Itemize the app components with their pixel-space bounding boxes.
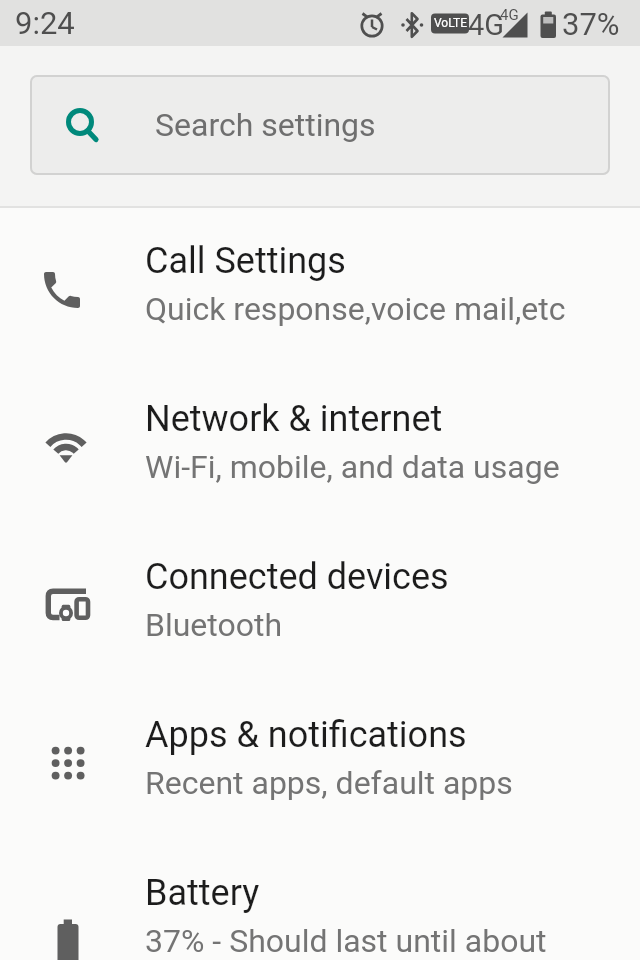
staticText: Recent apps, default apps: [145, 764, 513, 802]
staticText: 4G: [500, 6, 519, 24]
staticText: 37% - Should last until about: [145, 922, 547, 960]
button[interactable]: Apps & notifications: [0, 682, 640, 840]
staticText: Network & internet: [145, 398, 443, 440]
button[interactable]: Battery: [0, 840, 640, 960]
staticText: VoLTE: [434, 16, 468, 30]
staticText: 9:24: [15, 5, 75, 41]
staticText: Search settings: [155, 106, 376, 144]
staticText: Call Settings: [145, 240, 346, 282]
staticText: Wi-Fi, mobile, and data usage: [145, 448, 560, 486]
staticText: Connected devices: [145, 556, 449, 598]
button[interactable]: Connected devices: [0, 524, 640, 682]
staticText: Bluetooth: [145, 606, 283, 644]
button[interactable]: Search settings: [30, 75, 610, 175]
staticText: 37%: [562, 6, 620, 42]
staticText: Quick response,voice mail,etc: [145, 290, 566, 328]
staticText: 4G: [468, 8, 505, 42]
button[interactable]: Network & internet: [0, 366, 640, 524]
button[interactable]: Call Settings: [0, 208, 640, 366]
staticText: Apps & notifications: [145, 714, 467, 756]
staticText: Battery: [145, 872, 260, 914]
